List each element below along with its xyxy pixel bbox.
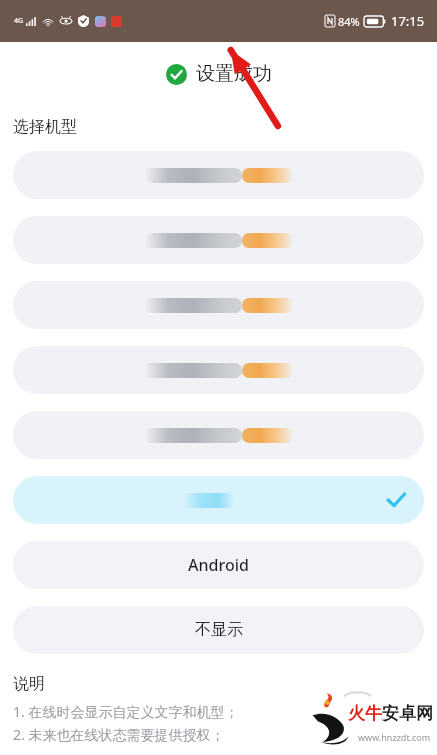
button[interactable]: 已选机型 bbox=[13, 476, 424, 524]
button[interactable]: 机型选项 bbox=[13, 281, 424, 329]
staticText: 84% bbox=[338, 14, 360, 29]
button[interactable]: Android bbox=[13, 541, 424, 589]
staticText: 火牛 bbox=[348, 703, 382, 724]
staticText: 4G bbox=[14, 16, 24, 26]
button[interactable]: 设置成功 bbox=[0, 42, 437, 105]
staticText: Android bbox=[188, 554, 249, 576]
button[interactable]: 机型选项 bbox=[13, 151, 424, 199]
staticText: 设置成功 bbox=[196, 62, 272, 86]
staticText: 17:15 bbox=[391, 12, 425, 30]
button[interactable]: 机型选项 bbox=[13, 346, 424, 394]
staticText: www.hnzzdt.com bbox=[358, 731, 431, 743]
staticText: 安卓网 bbox=[382, 703, 433, 724]
button[interactable]: 机型选项 bbox=[13, 411, 424, 459]
staticText: 1. 在线时会显示自定义文字和机型； bbox=[13, 702, 239, 721]
button[interactable]: 机型选项 bbox=[13, 216, 424, 264]
staticText: 选择机型 bbox=[13, 117, 77, 137]
staticText: 说明 bbox=[13, 674, 45, 694]
staticText: 不显示 bbox=[195, 620, 243, 640]
button[interactable]: 不显示 bbox=[13, 606, 424, 654]
staticText: 2. 未来也在线状态需要提供授权； bbox=[13, 725, 225, 744]
